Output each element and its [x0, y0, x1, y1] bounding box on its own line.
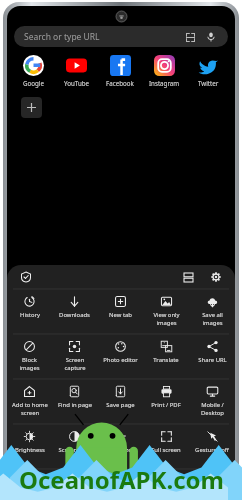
button[interactable]: Block images	[7, 335, 52, 379]
button[interactable]: History	[7, 290, 52, 334]
button[interactable]: Facebook	[98, 53, 142, 89]
staticText: Search or type URL	[24, 31, 100, 43]
staticText: Find in page	[58, 401, 92, 409]
button[interactable]: Security	[18, 269, 34, 285]
button[interactable]: Text size	[97, 425, 143, 469]
button[interactable]: Screen filter	[52, 425, 97, 469]
button[interactable]: Save page	[97, 380, 143, 424]
button[interactable]: Translate	[143, 335, 189, 379]
button[interactable]: Save all images	[189, 290, 235, 334]
staticText: Brightness	[15, 446, 45, 454]
button[interactable]: New tab	[97, 290, 143, 334]
staticText: View only images	[153, 311, 180, 327]
button[interactable]: Brightness	[7, 425, 52, 469]
button[interactable]: Downloads	[52, 290, 97, 334]
button[interactable]: Voice search	[204, 30, 218, 44]
staticText: Downloads	[59, 311, 90, 319]
staticText: Screen capture	[64, 356, 86, 372]
staticText: Twitter	[198, 79, 219, 87]
button[interactable]: Instagram	[142, 53, 186, 89]
button[interactable]: View only images	[143, 290, 189, 334]
staticText: New tab	[109, 311, 132, 319]
staticText: Text size	[108, 446, 132, 454]
staticText: Translate	[153, 356, 179, 364]
staticText: YouTube	[64, 79, 90, 87]
staticText: Google	[23, 79, 44, 87]
staticText: Block images	[19, 356, 40, 372]
staticText: Photo editor	[103, 356, 138, 364]
button[interactable]: Night mode	[73, 470, 120, 496]
staticText: Add to home screen	[12, 401, 48, 417]
button[interactable]: Add shortcut	[21, 97, 42, 118]
button[interactable]: Screen capture	[52, 335, 97, 379]
staticText: OceanofAPK.com	[19, 463, 224, 496]
button[interactable]: Add to home screen	[7, 380, 52, 424]
button[interactable]: Settings	[208, 269, 224, 285]
button[interactable]: Tabs	[180, 269, 196, 285]
staticText: History	[20, 311, 40, 319]
button[interactable]: Exit	[167, 470, 214, 496]
staticText: Facebook	[106, 79, 134, 87]
button[interactable]: Google	[12, 53, 55, 89]
button[interactable]: Full screen	[143, 425, 189, 469]
button[interactable]: Photo editor	[97, 335, 143, 379]
button[interactable]: Print / PDF	[143, 380, 189, 424]
button[interactable]: Reader mode	[27, 470, 73, 496]
button[interactable]: YouTube	[55, 53, 98, 89]
staticText: Screen filter	[58, 446, 92, 454]
staticText: Instagram	[149, 79, 180, 87]
staticText: Full screen	[151, 446, 181, 454]
button[interactable]: Mobile / Desktop	[189, 380, 235, 424]
staticText: Save page	[106, 401, 135, 409]
staticText: Print / PDF	[151, 401, 181, 409]
staticText: Share URL	[198, 356, 227, 364]
button[interactable]: Search or type URL	[14, 26, 228, 47]
button[interactable]: Share URL	[189, 335, 235, 379]
button[interactable]: Scan QR code	[183, 30, 197, 44]
staticText: Gestures off	[195, 446, 229, 454]
staticText: Save all images	[202, 311, 223, 327]
button[interactable]: Gestures off	[189, 425, 235, 469]
button[interactable]: Desktop	[120, 470, 167, 496]
button[interactable]: Find in page	[52, 380, 97, 424]
staticText: Mobile / Desktop	[201, 401, 224, 417]
button[interactable]: Twitter	[186, 53, 230, 89]
